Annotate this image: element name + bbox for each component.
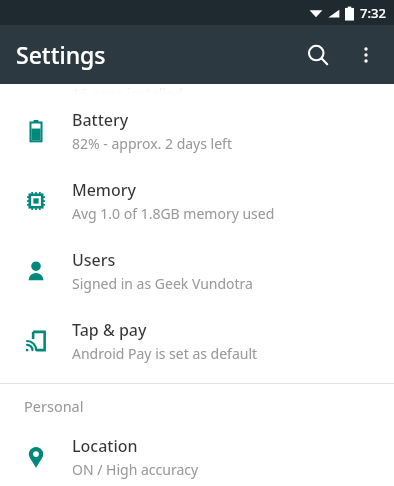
button[interactable]: Location bbox=[0, 427, 394, 486]
staticText: Personal bbox=[24, 396, 84, 416]
staticText: Settings bbox=[16, 39, 106, 70]
staticText: Avg 1.0 of 1.8GB memory used bbox=[72, 204, 275, 223]
staticText: Signed in as Geek Vundotra bbox=[72, 274, 253, 293]
staticText: ON / High accuracy bbox=[72, 460, 199, 479]
staticText: Location bbox=[72, 435, 138, 457]
button[interactable]: Search bbox=[294, 31, 342, 79]
staticText: Users bbox=[72, 249, 116, 271]
staticText: Battery bbox=[72, 109, 129, 131]
staticText: Memory bbox=[72, 179, 137, 201]
button[interactable]: Tap & pay bbox=[0, 306, 394, 376]
staticText: Android Pay is set as default bbox=[72, 344, 258, 363]
staticText: 82% - approx. 2 days left bbox=[72, 134, 232, 153]
staticText: 7:32 bbox=[360, 4, 386, 22]
button[interactable]: Memory bbox=[0, 166, 394, 236]
staticText: Tap & pay bbox=[72, 319, 147, 341]
button[interactable]: Users bbox=[0, 236, 394, 306]
button[interactable]: More options bbox=[342, 31, 390, 79]
button[interactable]: Battery bbox=[0, 96, 394, 166]
